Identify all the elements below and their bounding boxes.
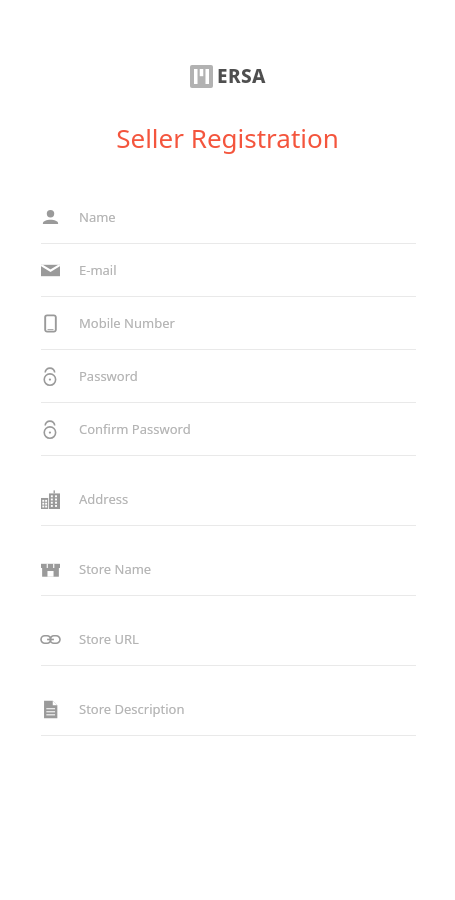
button[interactable]: Password <box>0 350 455 403</box>
button[interactable]: Mobile Number <box>0 297 455 350</box>
staticText: Address <box>79 490 129 508</box>
other: Store URL <box>41 630 60 649</box>
other: Name <box>41 208 60 227</box>
button[interactable]: Password <box>0 403 455 456</box>
staticText: Mobile Number <box>79 314 175 332</box>
staticText: Confirm Password <box>79 420 191 438</box>
button[interactable]: Store Description <box>0 666 455 736</box>
button[interactable]: Name <box>0 191 455 244</box>
other: Store Description <box>41 700 60 719</box>
other: Mobile Number <box>41 314 60 333</box>
staticText: E-mail <box>79 261 117 279</box>
other: E-mail <box>41 261 60 280</box>
staticText: Store Name <box>79 560 152 578</box>
staticText: Password <box>79 367 138 385</box>
button[interactable]: Store URL <box>0 596 455 666</box>
other: Store Name <box>41 560 60 579</box>
staticText: Store URL <box>79 630 139 648</box>
other: Password <box>41 420 60 439</box>
staticText: ERSA <box>217 63 266 89</box>
button[interactable]: Store Name <box>0 526 455 596</box>
staticText: Store Description <box>79 700 185 718</box>
staticText: Name <box>79 208 116 226</box>
button[interactable]: Address <box>0 456 455 526</box>
button[interactable]: E-mail <box>0 244 455 297</box>
other: Address <box>41 490 60 509</box>
staticText: Seller Registration <box>0 120 455 155</box>
other: Password <box>41 367 60 386</box>
